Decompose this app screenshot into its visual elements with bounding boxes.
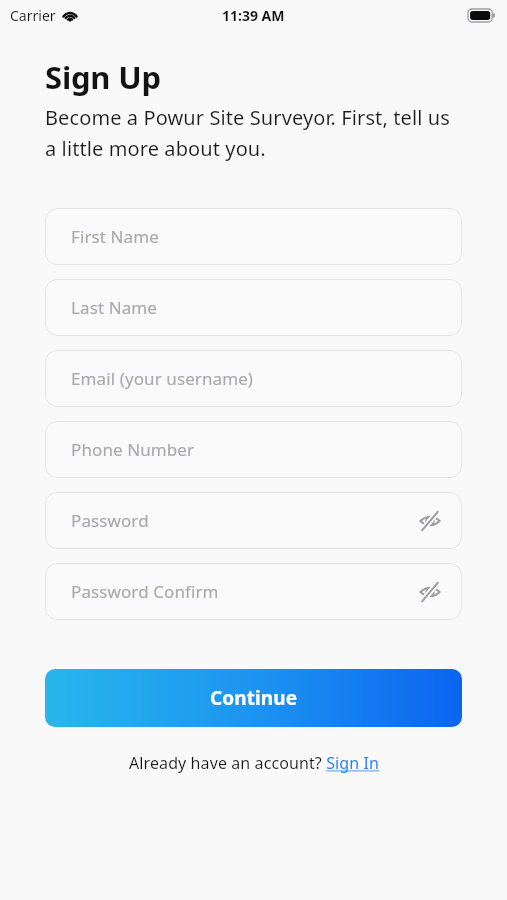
staticText: Sign Up: [45, 56, 161, 98]
staticText: Password: [71, 509, 149, 532]
button[interactable]: Last Name: [45, 279, 462, 336]
staticText: 11:39 AM: [222, 6, 285, 25]
staticText: Become a Powur Site Surveyor. First, tel…: [45, 104, 462, 162]
button[interactable]: First Name: [45, 208, 462, 265]
button[interactable]: Already have an account? Sign In: [123, 749, 385, 777]
button[interactable]: Password Confirm: [45, 563, 462, 620]
staticText: Continue: [210, 685, 298, 711]
staticText: Carrier: [10, 6, 56, 25]
staticText: Last Name: [71, 296, 157, 319]
button[interactable]: Email (your username): [45, 350, 462, 407]
button[interactable]: Continue: [45, 669, 462, 727]
staticText: Already have an account? Sign In: [129, 752, 379, 774]
button[interactable]: Show password: [415, 577, 445, 607]
button[interactable]: Phone Number: [45, 421, 462, 478]
button[interactable]: Password: [45, 492, 462, 549]
staticText: Password Confirm: [71, 580, 219, 603]
staticText: Email (your username): [71, 367, 254, 390]
button[interactable]: Show password: [415, 506, 445, 536]
staticText: Phone Number: [71, 438, 195, 461]
staticText: First Name: [71, 225, 159, 248]
